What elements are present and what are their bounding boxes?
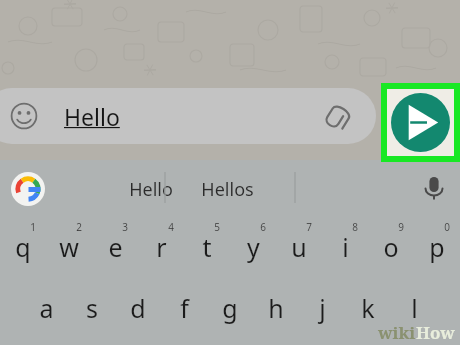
staticText: h bbox=[268, 291, 284, 325]
staticText: f bbox=[180, 291, 189, 325]
button[interactable]: w bbox=[46, 218, 92, 275]
button[interactable]: s bbox=[69, 279, 115, 336]
staticText: Hello bbox=[129, 177, 173, 202]
staticText: u bbox=[291, 230, 307, 264]
staticText: 9 bbox=[398, 220, 404, 234]
staticText: 8 bbox=[352, 220, 358, 234]
staticText: t bbox=[202, 230, 212, 264]
button[interactable]: a bbox=[23, 279, 69, 336]
staticText: o bbox=[383, 230, 399, 264]
staticText: q bbox=[15, 230, 31, 264]
staticText: i bbox=[342, 230, 349, 264]
staticText: Hellos bbox=[201, 177, 254, 202]
button[interactable]: j bbox=[299, 279, 345, 336]
staticText: j bbox=[319, 291, 326, 325]
button[interactable]: g bbox=[207, 279, 253, 336]
staticText: 3 bbox=[122, 220, 128, 234]
staticText: wiki bbox=[378, 321, 416, 344]
staticText: k bbox=[361, 291, 375, 325]
staticText: 4 bbox=[168, 220, 174, 234]
button[interactable]: Emoji bbox=[0, 88, 376, 144]
button[interactable]: q bbox=[0, 218, 46, 275]
staticText: s bbox=[86, 291, 98, 325]
button[interactable]: d bbox=[115, 279, 161, 336]
staticText: 6 bbox=[260, 220, 266, 234]
button[interactable]: y bbox=[230, 218, 276, 275]
button[interactable]: Hello bbox=[68, 168, 234, 210]
button[interactable]: Send bbox=[391, 93, 450, 152]
staticText: e bbox=[108, 230, 123, 264]
button[interactable]: k bbox=[345, 279, 391, 336]
staticText: How bbox=[416, 321, 455, 344]
staticText: a bbox=[39, 291, 54, 325]
button[interactable]: l bbox=[391, 279, 437, 336]
button[interactable]: t bbox=[184, 218, 230, 275]
button[interactable]: p bbox=[414, 218, 460, 275]
staticText: 7 bbox=[306, 220, 312, 234]
button[interactable]: f bbox=[161, 279, 207, 336]
button[interactable]: Attach bbox=[322, 104, 348, 130]
button[interactable]: r bbox=[138, 218, 184, 275]
button[interactable]: Google bbox=[11, 172, 45, 206]
staticText: l bbox=[411, 291, 418, 325]
staticText: r bbox=[156, 230, 167, 264]
button[interactable]: Hellos bbox=[186, 168, 268, 210]
button[interactable]: Voice input bbox=[418, 172, 450, 204]
staticText: 1 bbox=[30, 220, 36, 234]
staticText: 5 bbox=[214, 220, 220, 234]
button[interactable]: h bbox=[253, 279, 299, 336]
button[interactable]: e bbox=[92, 218, 138, 275]
staticText: w bbox=[59, 230, 79, 264]
staticText: y bbox=[247, 230, 260, 264]
staticText: d bbox=[130, 291, 146, 325]
staticText: 0 bbox=[444, 220, 450, 234]
staticText: g bbox=[222, 291, 238, 325]
staticText: 2 bbox=[76, 220, 82, 234]
button[interactable]: u bbox=[276, 218, 322, 275]
button[interactable]: Emoji bbox=[10, 102, 38, 130]
staticText: p bbox=[429, 230, 445, 264]
button[interactable]: o bbox=[368, 218, 414, 275]
button[interactable]: i bbox=[322, 218, 368, 275]
staticText: Hello bbox=[64, 101, 120, 132]
